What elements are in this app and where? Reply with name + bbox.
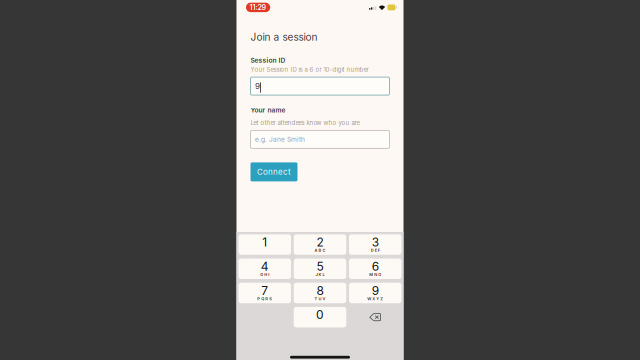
staticText: Your name (250, 106, 285, 114)
button[interactable]: 9 (349, 283, 401, 303)
staticText: W X Y Z (367, 296, 383, 301)
staticText: e.g. Jane Smith (255, 135, 305, 143)
staticText: 3 (372, 235, 379, 249)
button[interactable]: 9 (250, 77, 389, 95)
staticText: 2 (316, 235, 323, 249)
button[interactable]: 3 (349, 234, 401, 255)
button[interactable]: 5 (294, 258, 346, 279)
button[interactable]: 6 (349, 258, 401, 279)
button[interactable]: Connect (250, 162, 297, 181)
button[interactable]: 2 (294, 234, 346, 255)
staticText: Join a session (250, 31, 317, 43)
staticText: 8 (316, 283, 323, 298)
staticText: D E F (371, 248, 380, 253)
button[interactable]: 7 (238, 283, 291, 303)
button[interactable]: 8 (294, 283, 346, 303)
staticText: T U V (314, 296, 325, 301)
staticText: 7 (261, 283, 268, 298)
staticText: 9 (372, 283, 379, 298)
button[interactable]: e.g. Jane Smith (250, 130, 389, 148)
staticText: 5 (316, 259, 323, 274)
staticText: 0 (316, 307, 324, 322)
staticText: M N O (369, 272, 381, 277)
staticText: A B C (314, 248, 325, 253)
staticText: 9 (255, 81, 260, 91)
button[interactable]: 0 (294, 307, 346, 327)
button[interactable]: 1 (238, 234, 291, 255)
staticText: J K L (315, 272, 324, 277)
staticText: 4 (261, 259, 269, 274)
staticText: 6 (372, 259, 379, 274)
staticText: Let other attendees know who you are (250, 119, 359, 126)
button[interactable]: Delete (349, 307, 401, 327)
staticText: P Q R S (257, 296, 272, 301)
button[interactable]: 4 (238, 258, 291, 279)
staticText: Connect (257, 167, 291, 177)
staticText: 11:29 (250, 3, 267, 12)
staticText: Session ID (250, 56, 285, 64)
staticText: G H I (260, 272, 269, 277)
staticText: Your Session ID is a 6 or 10-digit numbe… (250, 66, 368, 73)
staticText: 1 (262, 235, 267, 249)
